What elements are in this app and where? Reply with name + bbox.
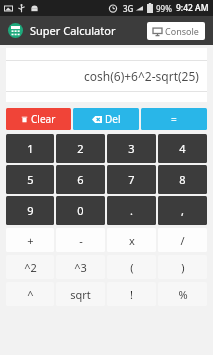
- staticText: -: [79, 233, 83, 248]
- button[interactable]: /: [158, 228, 207, 252]
- button[interactable]: !: [107, 282, 156, 306]
- button[interactable]: sqrt: [56, 282, 105, 306]
- staticText: .: [130, 203, 133, 218]
- button[interactable]: 3: [107, 134, 156, 163]
- button[interactable]: 4: [158, 134, 207, 163]
- button[interactable]: Del: [73, 108, 139, 130]
- button[interactable]: Clear: [6, 108, 71, 130]
- button[interactable]: x: [107, 228, 156, 252]
- button[interactable]: 5: [6, 165, 54, 194]
- button[interactable]: =: [141, 108, 207, 130]
- staticText: (: [130, 260, 134, 275]
- staticText: ,: [181, 203, 184, 218]
- staticText: 8: [179, 172, 186, 187]
- staticText: x: [129, 233, 135, 248]
- staticText: +: [27, 233, 34, 248]
- button[interactable]: 7: [107, 165, 156, 194]
- staticText: sqrt: [70, 287, 91, 302]
- button[interactable]: ^: [6, 282, 54, 306]
- staticText: =: [171, 112, 177, 126]
- staticText: Super Calculator: [30, 23, 116, 38]
- button[interactable]: 6: [56, 165, 105, 194]
- button[interactable]: 2: [56, 134, 105, 163]
- staticText: %: [178, 287, 188, 302]
- staticText: !: [130, 287, 133, 302]
- staticText: 5: [27, 172, 34, 187]
- button[interactable]: 0: [56, 196, 105, 225]
- staticText: ^2: [24, 260, 37, 275]
- staticText: 2: [77, 141, 84, 156]
- button[interactable]: -: [56, 228, 105, 252]
- staticText: ): [181, 260, 185, 275]
- button[interactable]: .: [107, 196, 156, 225]
- staticText: 6: [77, 172, 84, 187]
- staticText: ^: [27, 287, 34, 302]
- button[interactable]: ^3: [56, 255, 105, 279]
- button[interactable]: 9: [6, 196, 54, 225]
- staticText: 99%: [156, 3, 172, 14]
- staticText: Del: [105, 112, 121, 126]
- staticText: cosh(6)+6^2-sqrt(25): [84, 68, 199, 84]
- staticText: 3: [128, 141, 135, 156]
- button[interactable]: 1: [6, 134, 54, 163]
- staticText: 0: [77, 203, 84, 218]
- button[interactable]: ,: [158, 196, 207, 225]
- staticText: 4: [179, 141, 186, 156]
- staticText: 9:42 AM: [176, 2, 209, 14]
- staticText: 7: [128, 172, 135, 187]
- staticText: 9: [27, 203, 34, 218]
- staticText: Clear: [31, 112, 56, 126]
- staticText: ^3: [74, 260, 87, 275]
- button[interactable]: ^2: [6, 255, 54, 279]
- button[interactable]: (: [107, 255, 156, 279]
- button[interactable]: +: [6, 228, 54, 252]
- button[interactable]: ): [158, 255, 207, 279]
- staticText: 3G: [123, 3, 134, 14]
- staticText: Console: [165, 25, 199, 37]
- staticText: 1: [27, 141, 34, 156]
- button[interactable]: 8: [158, 165, 207, 194]
- staticText: /: [180, 233, 185, 248]
- button[interactable]: %: [158, 282, 207, 306]
- button[interactable]: Console: [147, 22, 205, 40]
